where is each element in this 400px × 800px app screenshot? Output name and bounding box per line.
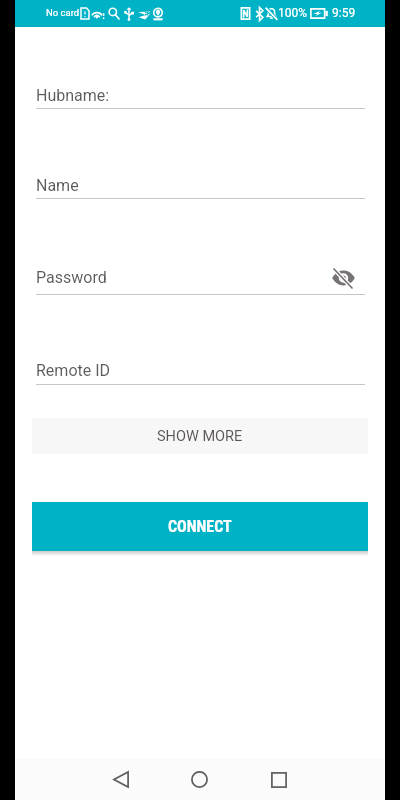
staticText: Remote ID	[36, 361, 111, 380]
button[interactable]: Home	[184, 764, 215, 795]
staticText: Hubname:	[36, 86, 110, 105]
staticText: 100%	[278, 6, 308, 20]
staticText: SHOW MORE	[157, 428, 243, 445]
staticText: 9:59	[332, 6, 356, 20]
button[interactable]: Recent apps	[263, 764, 294, 795]
button[interactable]: SHOW MORE	[32, 418, 368, 454]
button[interactable]: CONNECT	[32, 502, 368, 551]
staticText: Password	[36, 268, 107, 287]
staticText: No card	[46, 7, 80, 18]
button[interactable]: Back	[105, 764, 136, 795]
staticText: CONNECT	[168, 517, 232, 536]
button[interactable]: Toggle password visibility	[329, 263, 358, 292]
staticText: Name	[36, 176, 79, 195]
